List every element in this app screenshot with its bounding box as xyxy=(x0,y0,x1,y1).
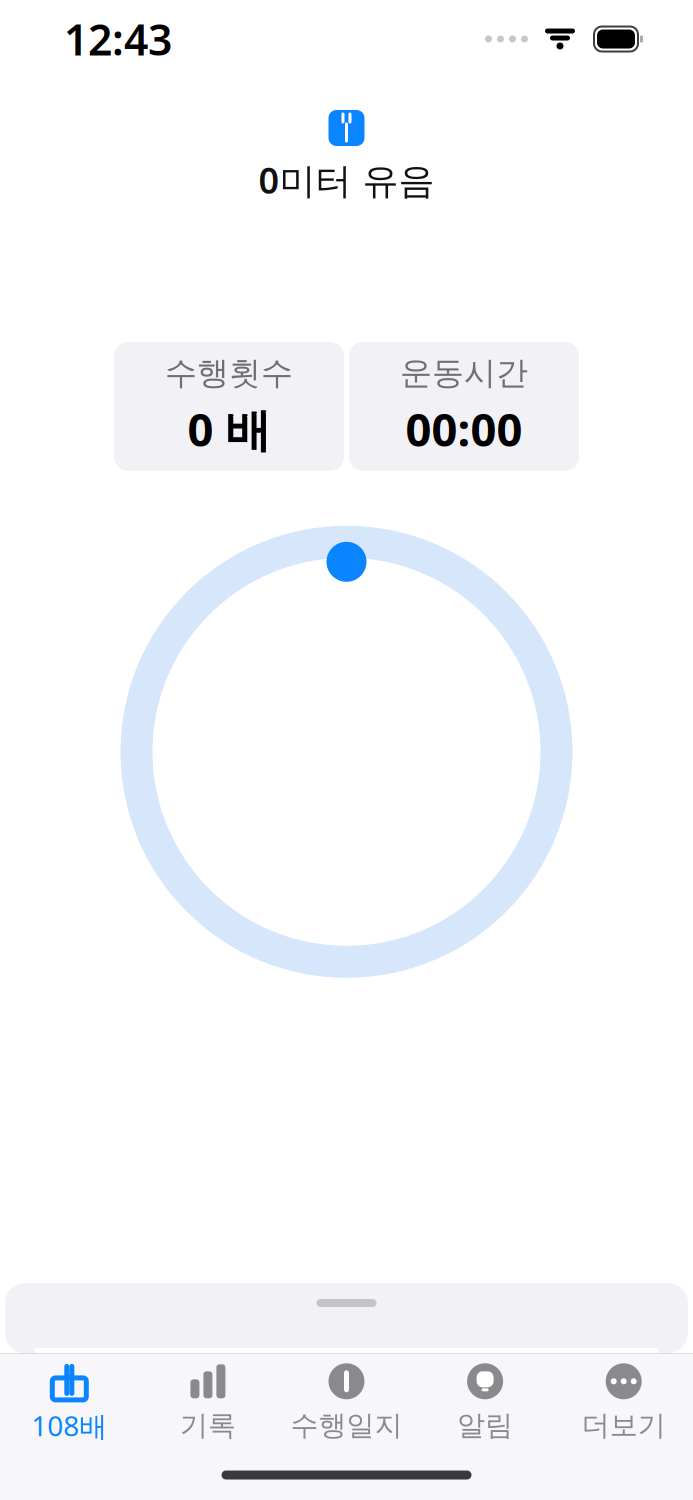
button[interactable]: 알림 xyxy=(416,1354,554,1450)
button[interactable]: 기록 xyxy=(139,1354,277,1450)
button[interactable]: 108배 xyxy=(0,1354,139,1450)
staticText: 0미터 유음 xyxy=(258,156,434,204)
staticText: 기록 xyxy=(180,1408,236,1443)
button[interactable]: 올리기 xyxy=(328,110,364,146)
staticText: 108배 xyxy=(31,1407,107,1444)
button[interactable]: 수행일지 xyxy=(277,1354,416,1450)
staticText: 12:43 xyxy=(64,11,172,67)
staticText: 수행일지 xyxy=(290,1408,402,1443)
staticText: 수행횟수 xyxy=(165,354,293,393)
staticText: 운동시간 xyxy=(400,354,528,393)
staticText: 알림 xyxy=(457,1408,513,1443)
button[interactable]: 더보기 xyxy=(554,1354,693,1450)
staticText: 00:00 xyxy=(405,399,522,459)
staticText: 더보기 xyxy=(582,1408,666,1443)
staticText: 0 배 xyxy=(187,399,270,459)
